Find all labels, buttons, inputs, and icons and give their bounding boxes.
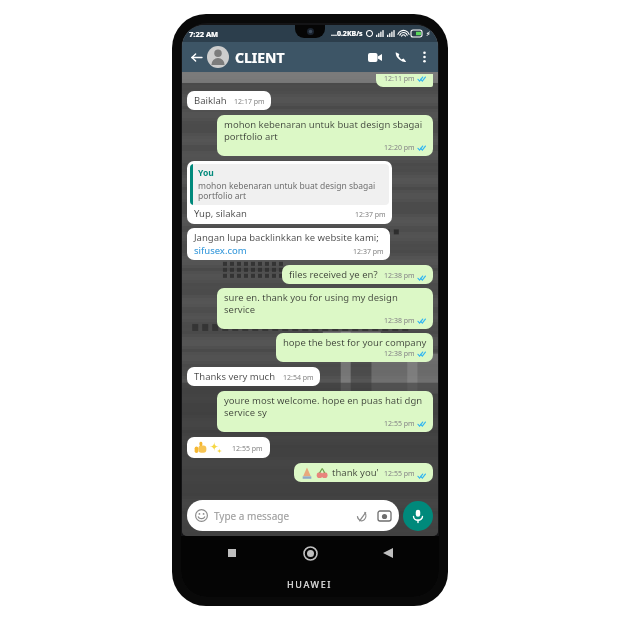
staticText: mohon kebenaran untuk buat design sbagai… bbox=[224, 118, 427, 143]
staticText: 12:54 pm bbox=[283, 373, 314, 383]
staticText: Jangan lupa backlinkkan ke website kami; bbox=[194, 231, 379, 244]
staticText: files received ye en? bbox=[289, 268, 378, 281]
staticText: 12:20 pm bbox=[384, 143, 415, 153]
staticText: Yup, silakan bbox=[194, 207, 247, 220]
staticText: hope the best for your company bbox=[283, 336, 427, 349]
staticText: Type a message bbox=[214, 509, 290, 523]
staticText: 12:37 pm bbox=[353, 247, 384, 257]
staticText: ⚡ bbox=[426, 30, 431, 37]
button[interactable]: Recents bbox=[219, 540, 245, 566]
button[interactable]: hope the best for your company bbox=[276, 333, 433, 362]
button[interactable]: Baiklah bbox=[187, 91, 271, 110]
button[interactable]: Emoji bbox=[194, 508, 209, 523]
button[interactable]: Emoji bbox=[187, 500, 399, 531]
button[interactable]: Jangan lupa backlinkkan ke website kami; bbox=[187, 228, 390, 260]
button[interactable]: Camera bbox=[376, 508, 392, 524]
staticText: 12:37 pm bbox=[355, 210, 386, 220]
button[interactable]: You bbox=[187, 161, 392, 224]
staticText: You bbox=[198, 167, 214, 179]
staticText: 12:17 pm bbox=[234, 97, 265, 107]
staticText: CLIENT bbox=[235, 48, 285, 67]
button[interactable]: Profile photo bbox=[207, 46, 229, 68]
staticText: HUAWEI bbox=[287, 578, 333, 590]
button[interactable]: CLIENT bbox=[235, 48, 285, 67]
staticText: 7:22 AM bbox=[189, 29, 219, 39]
button[interactable]: mohon kebenaran untuk buat design sbagai… bbox=[217, 115, 433, 156]
staticText: 12:38 pm bbox=[384, 349, 415, 359]
staticText: ...0.2KB/s bbox=[331, 29, 363, 39]
button[interactable]: More options bbox=[415, 48, 433, 66]
button[interactable]: Record voice message bbox=[403, 501, 433, 531]
button[interactable]: Back bbox=[187, 48, 205, 66]
staticText: thank you' bbox=[332, 466, 379, 479]
staticText: 12:38 pm bbox=[384, 316, 415, 326]
button[interactable]: 12:55 pm bbox=[187, 437, 270, 458]
staticText: 12:55 pm bbox=[384, 469, 415, 479]
button[interactable]: files received ye en? bbox=[282, 265, 433, 284]
staticText: Thanks very much bbox=[194, 370, 276, 383]
button[interactable]: Video call bbox=[364, 46, 386, 68]
staticText: sure en. thank you for using my design s… bbox=[224, 291, 427, 316]
button[interactable]: Back bbox=[375, 540, 401, 566]
button[interactable]: thank you' bbox=[294, 463, 433, 482]
staticText: mohon kebenaran untuk buat design sbagai… bbox=[198, 180, 384, 201]
button[interactable]: Home bbox=[297, 540, 323, 566]
staticText: 12:55 pm bbox=[384, 419, 415, 429]
staticText: sifusex.com bbox=[194, 244, 247, 257]
button[interactable]: Voice call bbox=[390, 46, 412, 68]
button[interactable]: sure en. thank you for using my design s… bbox=[217, 288, 433, 329]
staticText: Baiklah bbox=[194, 94, 227, 107]
staticText: 12:38 pm bbox=[384, 271, 415, 281]
button[interactable]: Thanks very much bbox=[187, 367, 320, 386]
staticText: 12:11 pm bbox=[384, 74, 415, 84]
button[interactable]: 12:11 pm bbox=[376, 74, 433, 87]
staticText: 12:55 pm bbox=[232, 444, 263, 454]
button[interactable]: Attach bbox=[354, 508, 370, 524]
staticText: youre most welcome. hope en puas hati dg… bbox=[224, 394, 427, 419]
button[interactable]: youre most welcome. hope en puas hati dg… bbox=[217, 391, 433, 432]
